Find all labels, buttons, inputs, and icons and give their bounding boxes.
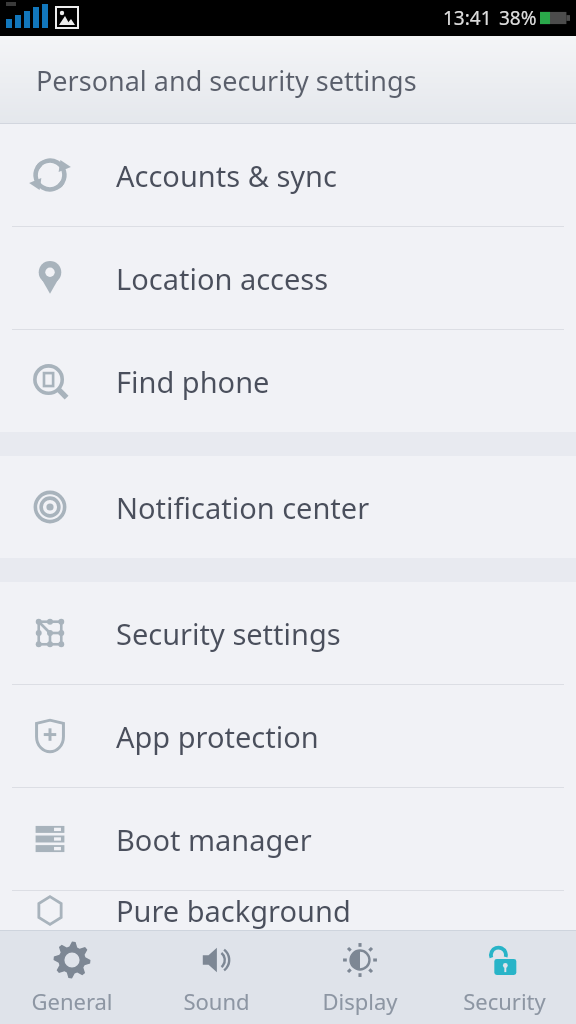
staticText: Security settings xyxy=(116,614,341,653)
staticText: Find phone xyxy=(116,362,270,401)
button[interactable]: Find phone xyxy=(0,330,576,432)
button[interactable]: Location access xyxy=(0,227,576,329)
staticText: Location access xyxy=(116,259,329,298)
button[interactable]: Sound xyxy=(144,930,288,1024)
button[interactable]: App protection xyxy=(0,685,576,787)
button[interactable]: General xyxy=(0,930,144,1024)
button[interactable]: Security settings xyxy=(0,582,576,684)
staticText: 38% xyxy=(499,5,537,31)
button[interactable]: Boot manager xyxy=(0,788,576,890)
staticText: Accounts & sync xyxy=(116,156,337,195)
staticText: Boot manager xyxy=(116,820,312,859)
staticText: General xyxy=(31,986,113,1016)
staticText: Personal and security settings xyxy=(36,62,417,99)
button[interactable]: Notification center xyxy=(0,456,576,558)
staticText: Security xyxy=(463,986,546,1016)
staticText: Display xyxy=(322,986,398,1016)
staticText: App protection xyxy=(116,717,319,756)
button[interactable]: Pure background xyxy=(0,891,576,930)
button[interactable]: Display xyxy=(288,930,432,1024)
button[interactable]: Accounts & sync xyxy=(0,124,576,226)
staticText: 13:41 xyxy=(443,5,492,31)
staticText: Pure background xyxy=(116,891,351,930)
staticText: Sound xyxy=(183,986,250,1016)
staticText: Notification center xyxy=(116,488,370,527)
button[interactable]: Security xyxy=(432,930,576,1024)
